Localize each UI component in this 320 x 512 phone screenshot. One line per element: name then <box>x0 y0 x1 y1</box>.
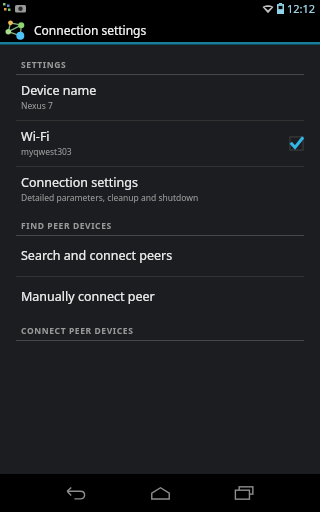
staticText: CONNECT PEER DEVICES <box>21 325 134 337</box>
button[interactable]: Device name <box>0 75 320 120</box>
staticText: 12:12 <box>287 1 316 16</box>
staticText: Nexus 7 <box>21 100 53 112</box>
staticText: Connection settings <box>34 22 147 38</box>
staticText: Wi-Fi <box>21 128 50 145</box>
button[interactable]: Wi-Fi enabled <box>288 135 304 151</box>
staticText: Connection settings <box>21 174 138 191</box>
button[interactable]: Connection settings <box>0 167 320 212</box>
staticText: FIND PEER DEVICES <box>21 220 112 232</box>
button[interactable]: Manually connect peer <box>0 277 320 317</box>
button[interactable]: Recent apps <box>222 478 266 508</box>
button[interactable]: Wi-Fi <box>0 121 320 166</box>
staticText: Detailed parameters, cleanup and shutdow… <box>21 192 199 204</box>
staticText: myqwest303 <box>21 146 72 158</box>
staticText: Search and connect peers <box>21 247 173 264</box>
button[interactable]: Home <box>138 478 182 508</box>
button[interactable]: Connection settings <box>0 17 320 42</box>
button[interactable]: Search and connect peers <box>0 236 320 276</box>
staticText: Manually connect peer <box>21 288 155 305</box>
button[interactable]: Back <box>54 478 98 508</box>
staticText: SETTINGS <box>21 59 67 71</box>
staticText: Device name <box>21 82 97 99</box>
